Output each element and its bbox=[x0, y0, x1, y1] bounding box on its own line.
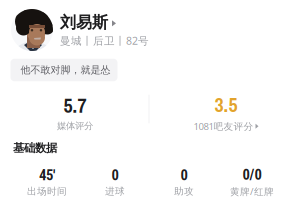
staticText: 曼城丨后卫丨82号 bbox=[60, 33, 149, 48]
staticText: 黄牌/红牌 bbox=[230, 185, 274, 198]
staticText: 媒体评分 bbox=[57, 120, 93, 132]
staticText: 他不敢对脚，就是怂 bbox=[20, 64, 110, 76]
button[interactable]: 刘易斯 bbox=[0, 6, 300, 54]
staticText: 0 bbox=[180, 167, 187, 184]
staticText: 助攻 bbox=[174, 185, 194, 197]
staticText: 45' bbox=[39, 167, 55, 184]
staticText: 1081吧友评分 bbox=[193, 120, 253, 133]
staticText: 0/0 bbox=[242, 166, 261, 183]
staticText: 基础数据 bbox=[13, 141, 57, 155]
staticText: 进球 bbox=[105, 185, 125, 197]
button[interactable]: 3.5 bbox=[171, 93, 281, 131]
staticText: 出场时间 bbox=[27, 185, 67, 197]
staticText: 5.7 bbox=[63, 92, 86, 119]
staticText: 3.5 bbox=[214, 91, 237, 118]
staticText: 0 bbox=[111, 167, 118, 184]
staticText: 刘易斯 bbox=[60, 12, 108, 32]
